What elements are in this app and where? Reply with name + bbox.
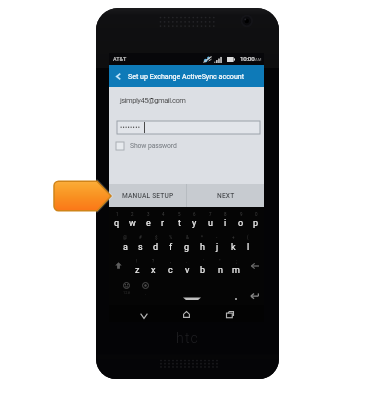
staticText: * [201, 235, 203, 240]
button[interactable]: Back [130, 305, 157, 322]
staticText: s [138, 242, 143, 253]
staticText: m [232, 265, 240, 276]
staticText: l [247, 242, 250, 253]
button[interactable] [225, 242, 240, 265]
button[interactable] [128, 265, 145, 288]
button[interactable] [211, 265, 228, 288]
staticText: & [186, 235, 189, 240]
button[interactable] [218, 218, 234, 241]
staticText: w [129, 218, 136, 229]
button[interactable]: Navigate up [109, 65, 128, 87]
staticText: . [186, 259, 188, 264]
button[interactable]: Space [155, 286, 229, 303]
staticText: 4 [162, 212, 165, 217]
staticText: # [139, 235, 142, 240]
staticText: p [253, 218, 259, 229]
staticText: n [218, 265, 223, 276]
staticText: % [169, 235, 173, 240]
staticText: " [219, 259, 221, 264]
button[interactable] [210, 242, 225, 265]
staticText: d [153, 242, 159, 253]
staticText: 10:00 [240, 55, 255, 62]
staticText: @ [123, 235, 128, 240]
staticText: , [145, 290, 146, 295]
staticText: h [200, 242, 205, 253]
staticText: q [114, 218, 120, 229]
button[interactable]: NEXT [187, 184, 264, 207]
button[interactable]: Recent apps [216, 305, 243, 322]
staticText: a [123, 242, 128, 253]
button[interactable]: •••••••• [117, 121, 260, 134]
staticText: 5 [178, 212, 181, 217]
button[interactable]: Shift [109, 254, 128, 277]
staticText: v [185, 265, 190, 276]
staticText: jsimply45@gmail.com [120, 96, 186, 105]
staticText: ( [247, 235, 249, 240]
button[interactable]: Home [173, 305, 200, 322]
button[interactable] [178, 265, 195, 288]
staticText: 12# [123, 290, 130, 295]
button[interactable] [187, 218, 203, 241]
button[interactable] [241, 242, 256, 265]
staticText: f [169, 242, 173, 253]
staticText: •••••••• [120, 124, 141, 132]
staticText: o [238, 218, 244, 229]
staticText: i [224, 218, 227, 229]
button[interactable] [195, 265, 212, 288]
staticText: u [208, 218, 213, 229]
button[interactable]: MANUAL SETUP [109, 184, 186, 207]
staticText: 3 [147, 212, 150, 217]
button[interactable] [156, 218, 172, 241]
staticText: 1 [116, 212, 119, 217]
button[interactable]: Show password [116, 140, 177, 152]
button[interactable]: Symbols [117, 282, 135, 302]
staticText: r [161, 218, 165, 229]
staticText: ! [136, 259, 138, 264]
button[interactable] [171, 218, 187, 241]
button[interactable] [228, 265, 245, 288]
staticText: k [231, 242, 236, 253]
button[interactable] [140, 218, 156, 241]
button[interactable] [179, 242, 194, 265]
button[interactable] [148, 242, 163, 265]
staticText: 8 [224, 212, 227, 217]
staticText: t [178, 218, 181, 229]
staticText: $ [155, 235, 158, 240]
staticText: ; [236, 259, 237, 264]
button[interactable] [125, 218, 141, 241]
staticText: Set up Exchange ActiveSync account [128, 72, 245, 80]
staticText: c [168, 265, 173, 276]
button[interactable] [145, 265, 162, 288]
button[interactable] [194, 242, 209, 265]
staticText: 9 [240, 212, 243, 217]
staticText: , [170, 259, 171, 264]
staticText: 0 [255, 212, 258, 217]
staticText: 2 [131, 212, 134, 217]
button[interactable] [202, 218, 218, 241]
button[interactable]: Navigate up [109, 65, 264, 87]
staticText: Show password [130, 142, 177, 150]
staticText: ' [203, 259, 204, 264]
staticText: AM [255, 57, 262, 62]
staticText: ? [152, 259, 155, 264]
button[interactable] [109, 218, 125, 241]
staticText: AT&T [113, 56, 127, 62]
staticText: MANUAL SETUP [122, 192, 174, 200]
staticText: g [184, 242, 190, 253]
staticText: htc [176, 330, 200, 346]
button[interactable] [117, 242, 132, 265]
button[interactable] [163, 242, 178, 265]
staticText: x [151, 265, 156, 276]
staticText: + [232, 235, 235, 240]
button[interactable] [227, 286, 244, 303]
staticText: NEXT [217, 192, 235, 200]
button[interactable] [249, 218, 265, 241]
staticText: b [200, 265, 206, 276]
button[interactable]: Backspace [245, 254, 264, 277]
button[interactable] [233, 218, 249, 241]
button[interactable] [132, 242, 147, 265]
staticText: z [135, 265, 140, 276]
button[interactable] [162, 265, 179, 288]
button[interactable]: Enter [244, 286, 264, 303]
button[interactable]: Input settings [136, 282, 154, 302]
